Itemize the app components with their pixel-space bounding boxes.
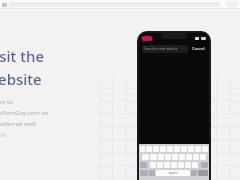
staticText: ur preferred web — [0, 120, 36, 128]
button[interactable]: Key — [160, 146, 166, 152]
staticText: ...g on to — [0, 98, 13, 106]
button[interactable]: Key — [167, 146, 173, 152]
staticText: Visit the — [0, 46, 45, 66]
button[interactable]: Key — [200, 154, 206, 160]
button[interactable]: Cancel — [191, 46, 206, 51]
button[interactable]: Go — [198, 170, 208, 176]
button[interactable]: Key — [174, 146, 180, 152]
staticText: Cancel — [192, 46, 205, 51]
button[interactable]: Key — [171, 162, 177, 168]
staticText: space — [169, 171, 178, 175]
staticText: xThePornGuy.com on — [0, 109, 49, 117]
button[interactable]: Key — [158, 154, 164, 160]
staticText: website — [0, 69, 42, 89]
button[interactable]: Key — [172, 154, 178, 160]
button[interactable]: Key — [153, 146, 159, 152]
button[interactable]: Key — [181, 146, 187, 152]
button[interactable]: Search or enter website name — [142, 45, 188, 53]
button[interactable]: Key — [146, 146, 152, 152]
button[interactable]: Key — [193, 154, 199, 160]
button[interactable]: Tab — [2, 3, 7, 7]
button[interactable]: Key — [165, 154, 171, 160]
button[interactable]: Key — [186, 154, 192, 160]
button[interactable]: Key — [178, 162, 184, 168]
button[interactable]: Key — [179, 154, 185, 160]
button[interactable]: Key — [185, 162, 191, 168]
button[interactable]: Key — [142, 154, 149, 160]
button[interactable]: Key — [192, 162, 198, 168]
button[interactable]: Key — [195, 146, 201, 152]
button[interactable]: Key — [150, 162, 156, 168]
button[interactable]: Key — [188, 146, 194, 152]
button[interactable]: Logo — [142, 36, 152, 41]
button[interactable]: space — [156, 170, 190, 176]
button[interactable]: Key — [150, 154, 157, 160]
staticText: Search or enter website name — [144, 47, 186, 51]
button[interactable]: Key — [140, 146, 145, 152]
button[interactable]: Key — [202, 146, 208, 152]
button[interactable]: Key — [164, 162, 170, 168]
button[interactable]: Key — [157, 162, 163, 168]
